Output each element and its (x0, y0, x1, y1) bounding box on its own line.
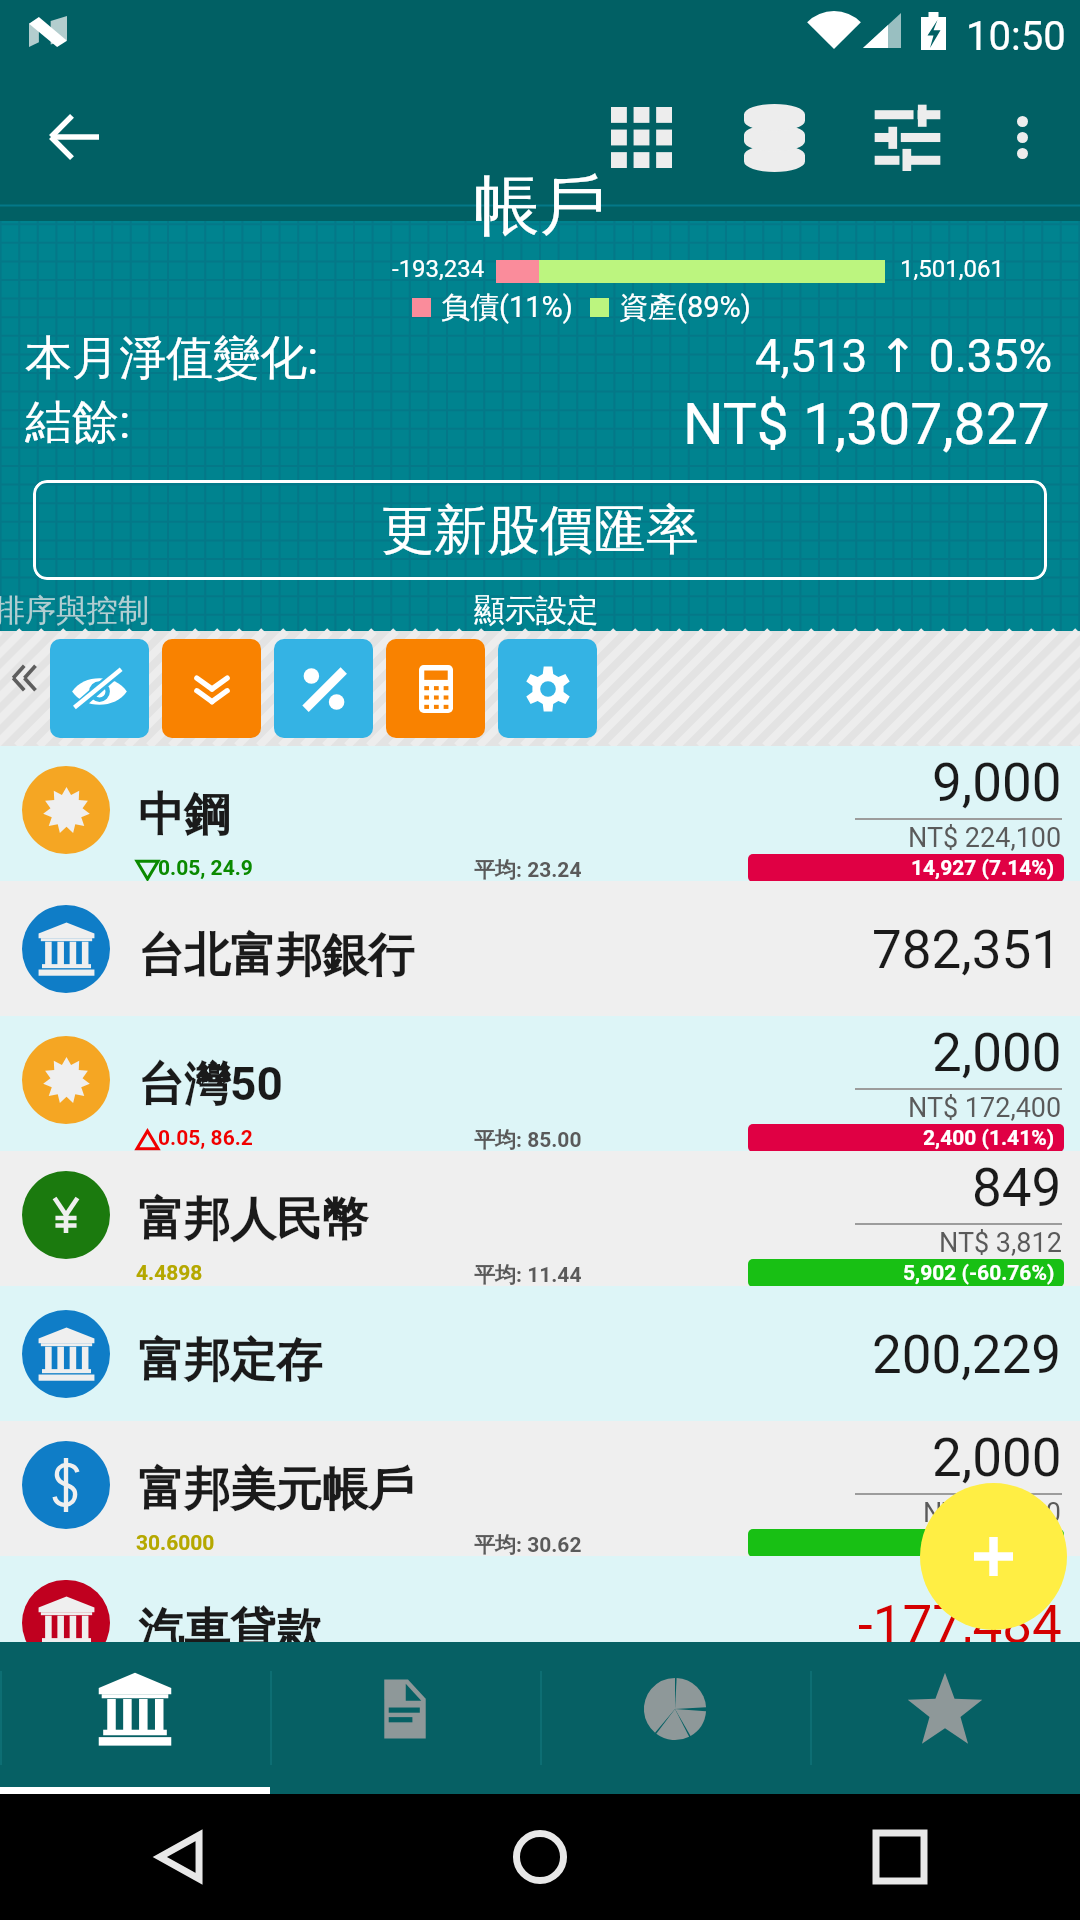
staticText: 2,000 (932, 1022, 1062, 1084)
staticText: 平均: 23.24 (474, 857, 582, 883)
staticText: 帳戶 (474, 164, 606, 247)
staticText: 更新股價匯率 (381, 497, 699, 564)
staticText: 台北富邦銀行 (138, 927, 414, 985)
button[interactable]: Charts (540, 1642, 810, 1794)
button[interactable]: 富邦定存 (0, 1286, 1080, 1421)
staticText: 負債(11%) (441, 289, 573, 326)
staticText: NT$ 1,307,827 (683, 391, 1050, 458)
button[interactable]: Accounts (0, 1642, 270, 1794)
button[interactable]: 汽車貸款 (0, 1556, 1080, 1642)
button[interactable]: Database (721, 84, 828, 191)
button[interactable]: Settings (498, 639, 597, 738)
staticText: 30.6000 (136, 1531, 215, 1556)
staticText: NT$ 224,100 (908, 822, 1062, 854)
staticText: NT$ 61,240 (923, 1497, 1062, 1529)
staticText: 200,229 (872, 1324, 1062, 1386)
staticText: 富邦定存 (138, 1332, 322, 1390)
staticText: 顯示設定 (474, 591, 598, 630)
staticText: 汽車貸款 (138, 1602, 322, 1642)
staticText: 782,351 (872, 919, 1062, 981)
staticText: 2,400 (1.41%) (923, 1126, 1055, 1151)
button[interactable]: 富邦人民幣 (0, 1151, 1080, 1286)
staticText: 14,927 (7.14%) (911, 856, 1055, 881)
staticText: 2,000 (932, 1427, 1062, 1489)
staticText: 5,902 (-60.76%) (903, 1261, 1055, 1286)
button[interactable]: 台灣50 (0, 1016, 1080, 1151)
staticText: 結餘: (25, 393, 131, 452)
staticText: 排序與控制 (0, 591, 149, 630)
staticText: NT$ 3,812 (939, 1227, 1062, 1259)
button[interactable]: More options (969, 84, 1076, 191)
button[interactable]: Expand all (162, 639, 261, 738)
staticText: 0.05, 86.2 (158, 1126, 253, 1151)
staticText: 平均: 30.62 (474, 1532, 582, 1558)
button[interactable]: Filter (854, 84, 961, 191)
button[interactable]: 台北富邦銀行 (0, 881, 1080, 1016)
staticText: 本月淨值變化: (25, 329, 319, 388)
staticText: 1,501,061 (900, 255, 1004, 283)
staticText: 平均: 11.44 (474, 1262, 582, 1288)
button[interactable]: Calculator (386, 639, 485, 738)
button[interactable]: 顯示設定 (474, 591, 598, 630)
button[interactable]: Back (20, 83, 127, 190)
staticText: -193,234 (392, 255, 485, 283)
button[interactable]: Hide balances (50, 639, 149, 738)
button[interactable]: Favorites (810, 1642, 1080, 1794)
button[interactable]: Records (270, 1642, 540, 1794)
button[interactable]: Percent view (274, 639, 373, 738)
staticText: 富邦美元帳戶 (138, 1461, 414, 1519)
staticText: 台灣50 (138, 1056, 283, 1114)
staticText: 0.05, 24.9 (158, 856, 253, 881)
staticText: 4.4898 (136, 1261, 203, 1286)
staticText: 4,513 ↑ 0.35% (755, 329, 1053, 383)
staticText: 10:50 (966, 13, 1066, 60)
staticText: -177,484 (858, 1594, 1062, 1642)
button[interactable]: 更新股價匯率 (33, 480, 1047, 580)
staticText: 資產(89%) (619, 289, 751, 326)
button[interactable]: 富邦美元帳戶 (0, 1421, 1080, 1556)
button[interactable]: 排序與控制 (0, 591, 149, 630)
staticText: 849 (972, 1157, 1062, 1219)
staticText: NT$ 172,400 (908, 1092, 1062, 1124)
button[interactable]: 中鋼 (0, 746, 1080, 881)
staticText: 9,000 (932, 752, 1062, 814)
button[interactable]: Apps (588, 84, 695, 191)
button[interactable]: Add account (920, 1483, 1067, 1630)
button[interactable]: Collapse panel (0, 631, 50, 746)
staticText: 富邦人民幣 (138, 1191, 368, 1249)
staticText: 平均: 85.00 (474, 1127, 582, 1153)
staticText: 中鋼 (138, 786, 230, 844)
